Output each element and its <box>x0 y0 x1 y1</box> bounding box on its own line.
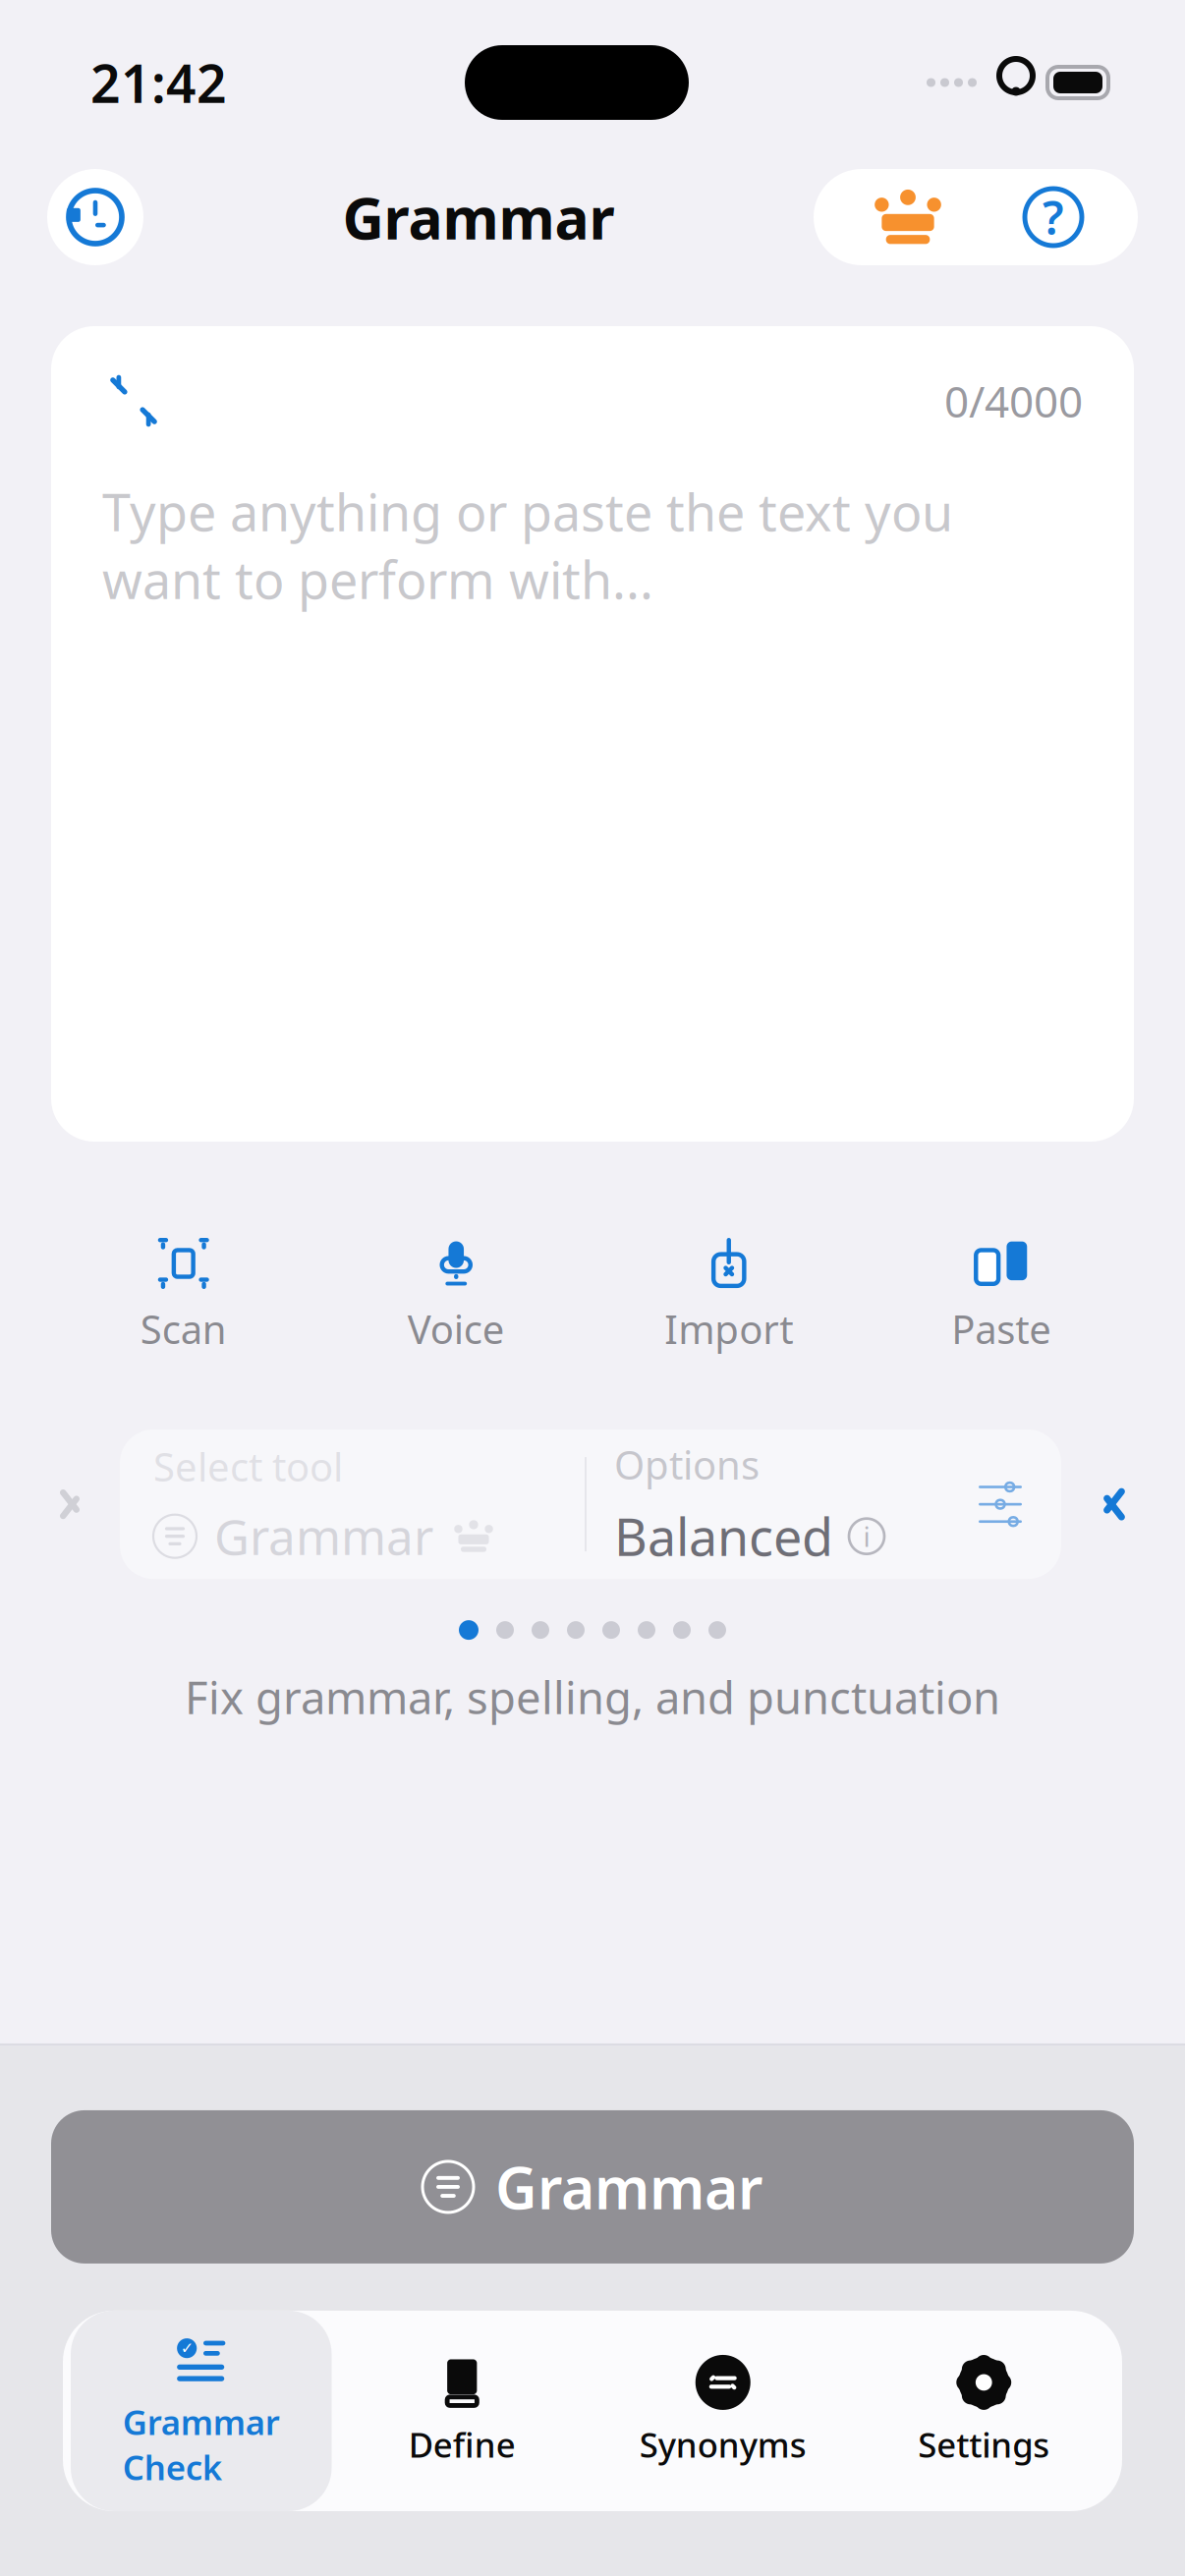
staticText: Scan <box>140 1303 227 1355</box>
staticText: 21:42 <box>90 48 227 117</box>
button[interactable]: Premium <box>863 182 953 252</box>
staticText: Import <box>664 1303 793 1355</box>
staticText: i <box>863 1518 870 1555</box>
button[interactable]: Settings <box>853 2333 1114 2488</box>
staticText: Fix grammar, spelling, and punctuation <box>185 1667 1000 1726</box>
button[interactable]: Tool settings <box>973 1477 1028 1532</box>
staticText: Voice <box>408 1303 505 1355</box>
staticText: Select tool <box>153 1440 343 1492</box>
button[interactable]: Grammar <box>51 2110 1134 2263</box>
staticText: 0/4000 <box>944 372 1083 430</box>
staticText: Grammar <box>214 1504 433 1568</box>
button[interactable]: ✓ <box>71 2311 332 2511</box>
staticText: Define <box>409 2422 516 2467</box>
button[interactable]: Voice <box>320 1232 592 1361</box>
staticText: Grammar Check <box>123 2399 280 2490</box>
staticText: Options <box>614 1438 760 1490</box>
button[interactable]: Expand editor <box>102 369 165 432</box>
button[interactable]: Paste <box>865 1232 1138 1361</box>
staticText: Grammar <box>342 179 615 255</box>
button[interactable]: Synonyms <box>592 2333 853 2488</box>
staticText: ✓ <box>181 2339 193 2357</box>
staticText: Type anything or paste the text you want… <box>102 477 953 613</box>
button[interactable]: Import <box>592 1232 865 1361</box>
staticText: Paste <box>951 1303 1052 1355</box>
staticText: ? <box>1043 187 1064 248</box>
staticText: Grammar <box>495 2149 762 2225</box>
staticText: Settings <box>918 2422 1050 2467</box>
button[interactable]: Next tool <box>1087 1473 1142 1536</box>
staticText: Synonyms <box>639 2422 807 2467</box>
button[interactable]: Previous tool <box>43 1475 96 1534</box>
button[interactable]: Scan <box>47 1232 320 1361</box>
button[interactable]: Help <box>1018 182 1089 252</box>
staticText: Balanced <box>614 1502 833 1570</box>
button[interactable]: History <box>47 169 143 265</box>
button[interactable]: Define <box>332 2333 592 2488</box>
